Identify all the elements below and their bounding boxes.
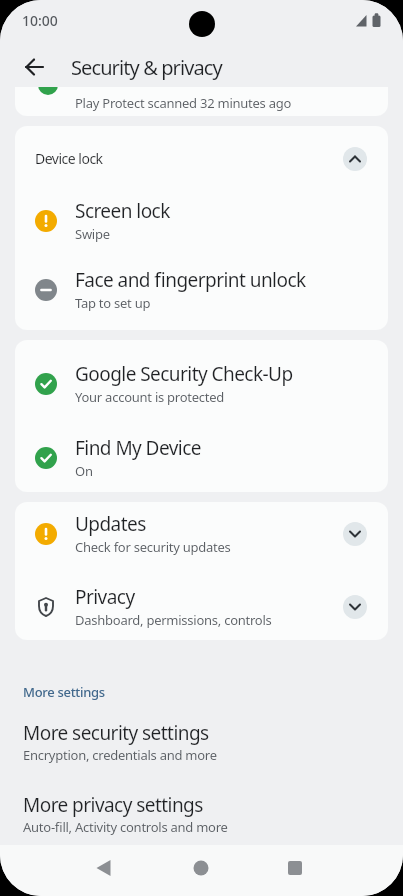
button[interactable]: Google Security Check-Up bbox=[15, 347, 388, 421]
button[interactable]: More security settings bbox=[23, 720, 363, 764]
staticText: More privacy settings bbox=[23, 792, 203, 818]
button[interactable]: Privacy bbox=[15, 570, 388, 640]
button[interactable]: Face and fingerprint unlock bbox=[15, 253, 388, 327]
staticText: Device lock bbox=[35, 149, 103, 168]
staticText: Tap to set up bbox=[75, 294, 151, 312]
staticText: More security settings bbox=[23, 720, 209, 746]
staticText: Face and fingerprint unlock bbox=[75, 267, 306, 293]
button[interactable]: Screen lock bbox=[15, 184, 388, 258]
staticText: Encryption, credentials and more bbox=[23, 746, 217, 764]
staticText: On bbox=[75, 462, 93, 480]
button[interactable]: Play Protect scanned 32 minutes ago bbox=[15, 70, 388, 116]
staticText: Swipe bbox=[75, 225, 110, 243]
staticText: Auto-fill, Activity controls and more bbox=[23, 818, 228, 836]
staticText: 10:00 bbox=[22, 11, 58, 30]
button[interactable] bbox=[84, 848, 124, 888]
staticText: Security & privacy bbox=[71, 54, 222, 81]
button[interactable]: Updates bbox=[15, 502, 388, 571]
staticText: Privacy bbox=[75, 584, 135, 610]
staticText: More settings bbox=[23, 683, 105, 701]
staticText: Your account is protected bbox=[75, 388, 225, 406]
staticText: Dashboard, permissions, controls bbox=[75, 611, 272, 629]
button[interactable] bbox=[181, 848, 221, 888]
staticText: Play Protect scanned 32 minutes ago bbox=[75, 94, 292, 112]
button[interactable]: Find My Device bbox=[15, 421, 388, 492]
button[interactable] bbox=[275, 848, 315, 888]
staticText: Google Security Check-Up bbox=[75, 361, 293, 387]
staticText: Check for security updates bbox=[75, 538, 231, 556]
button[interactable] bbox=[14, 55, 38, 79]
staticText: Updates bbox=[75, 511, 146, 537]
staticText: Screen lock bbox=[75, 198, 170, 224]
button[interactable] bbox=[343, 147, 367, 171]
staticText: Find My Device bbox=[75, 435, 201, 461]
button[interactable]: More privacy settings bbox=[23, 792, 363, 836]
